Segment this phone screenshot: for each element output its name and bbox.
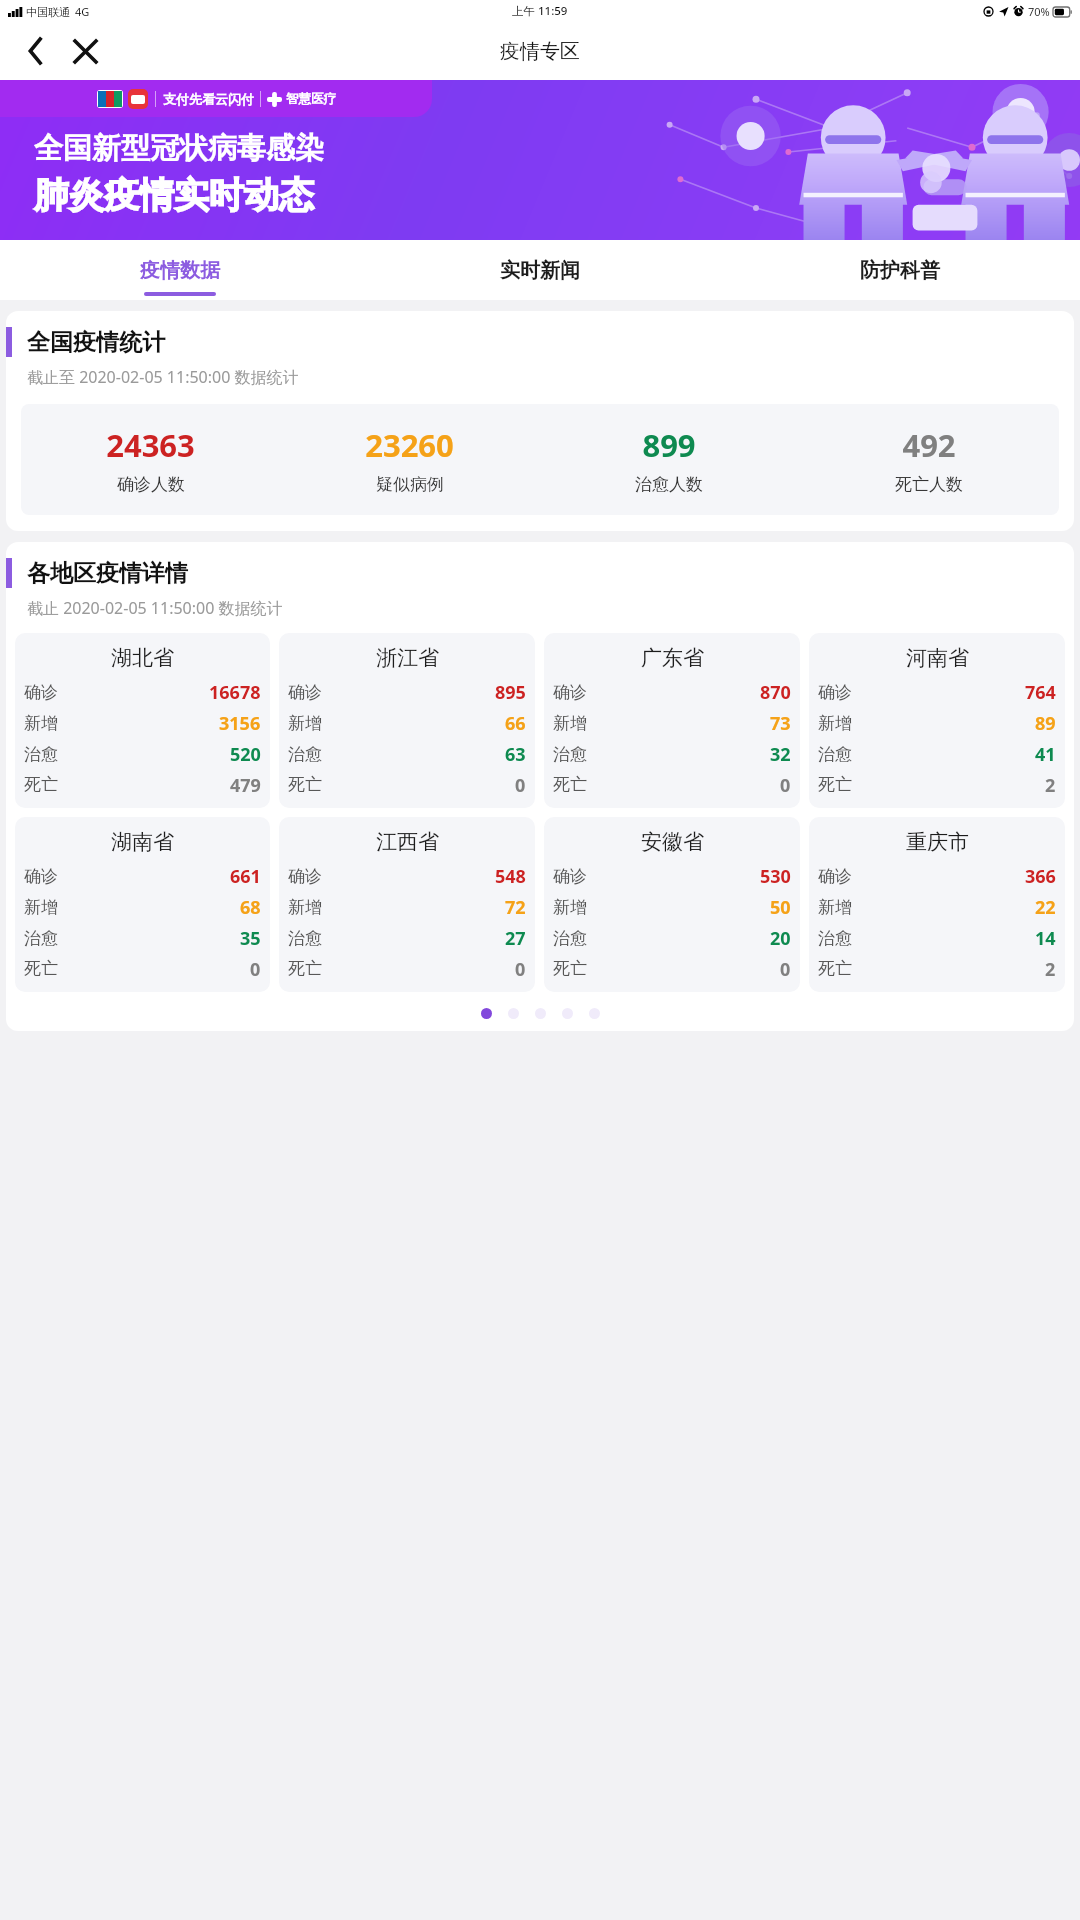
staticText: 366: [1025, 864, 1056, 889]
staticText: 0: [515, 773, 526, 796]
staticText: 新增: [24, 897, 58, 918]
button[interactable]: 实时新闻: [360, 240, 720, 300]
staticText: 0: [780, 957, 791, 980]
staticText: 确诊: [553, 866, 587, 887]
staticText: 870: [760, 680, 791, 705]
button[interactable]: 浙江省: [279, 633, 535, 808]
staticText: 新增: [818, 713, 852, 734]
staticText: 治愈: [24, 928, 58, 949]
staticText: 智慧医疗: [286, 91, 336, 107]
staticText: 63: [505, 742, 526, 767]
staticText: 上午 11:59: [512, 3, 568, 19]
staticText: 死亡人数: [895, 474, 963, 495]
staticText: 疑似病例: [376, 474, 444, 495]
staticText: 479: [230, 773, 261, 796]
button[interactable]: Back: [14, 30, 56, 72]
staticText: 治愈: [553, 744, 587, 765]
staticText: 死亡: [288, 958, 322, 979]
staticText: 3156: [219, 711, 261, 736]
staticText: 各地区疫情详情: [27, 559, 188, 588]
staticText: 661: [230, 864, 261, 889]
staticText: 河南省: [906, 645, 969, 671]
staticText: 68: [240, 895, 261, 920]
button[interactable]: 重庆市: [809, 817, 1065, 992]
button[interactable]: Page 3: [535, 1008, 546, 1019]
staticText: 89: [1035, 711, 1056, 736]
staticText: 确诊人数: [117, 474, 185, 495]
button[interactable]: 湖南省: [15, 817, 270, 992]
button[interactable]: Page 4: [562, 1008, 573, 1019]
staticText: 治愈: [24, 744, 58, 765]
button[interactable]: Page 2: [508, 1008, 519, 1019]
staticText: 确诊: [24, 866, 58, 887]
staticText: 确诊: [553, 682, 587, 703]
staticText: 764: [1025, 680, 1056, 705]
staticText: 安徽省: [641, 829, 704, 855]
button[interactable]: 防护科普: [720, 240, 1080, 300]
staticText: 新增: [553, 897, 587, 918]
staticText: 疫情数据: [140, 258, 220, 283]
staticText: 全国疫情统计: [27, 328, 165, 357]
staticText: 新增: [818, 897, 852, 918]
staticText: 41: [1035, 742, 1056, 767]
staticText: 492: [902, 424, 956, 466]
staticText: 66: [505, 711, 526, 736]
staticText: 支付先看云闪付: [163, 91, 254, 107]
staticText: 实时新闻: [500, 258, 580, 283]
staticText: 4G: [75, 4, 90, 19]
staticText: 治愈: [288, 928, 322, 949]
staticText: 32: [770, 742, 791, 767]
staticText: 20: [770, 926, 791, 951]
button[interactable]: Close: [64, 30, 106, 72]
button[interactable]: 湖北省: [15, 633, 270, 808]
staticText: 死亡: [818, 774, 852, 795]
staticText: 死亡: [24, 774, 58, 795]
staticText: 23260: [365, 424, 454, 466]
staticText: 湖北省: [111, 645, 174, 671]
staticText: 548: [495, 864, 526, 889]
staticText: 27: [505, 926, 526, 951]
staticText: 50: [770, 895, 791, 920]
staticText: 530: [760, 864, 791, 889]
staticText: 73: [770, 711, 791, 736]
staticText: 0: [515, 957, 526, 980]
staticText: 中国联通: [26, 5, 70, 19]
staticText: 疫情专区: [500, 39, 580, 64]
button[interactable]: 河南省: [809, 633, 1065, 808]
staticText: 14: [1035, 926, 1056, 951]
staticText: 截止 2020-02-05 11:50:00 数据统计: [27, 597, 283, 619]
staticText: 22: [1035, 895, 1056, 920]
staticText: 治愈: [818, 928, 852, 949]
staticText: 全国新型冠状病毒感染: [34, 130, 324, 167]
staticText: 72: [505, 895, 526, 920]
staticText: 新增: [288, 897, 322, 918]
staticText: 16678: [209, 680, 261, 705]
button[interactable]: 广东省: [544, 633, 800, 808]
staticText: 死亡: [24, 958, 58, 979]
button[interactable]: 支付先看云闪付: [0, 80, 1080, 240]
staticText: 新增: [553, 713, 587, 734]
staticText: 70%: [1028, 4, 1050, 19]
staticText: 确诊: [288, 866, 322, 887]
staticText: 2: [1045, 773, 1056, 796]
staticText: 肺炎疫情实时动态: [34, 173, 314, 217]
staticText: 新增: [24, 713, 58, 734]
staticText: 35: [240, 926, 261, 951]
button[interactable]: 全国疫情统计: [6, 311, 1074, 531]
button[interactable]: Page 1: [481, 1008, 492, 1019]
staticText: 新增: [288, 713, 322, 734]
staticText: 截止至 2020-02-05 11:50:00 数据统计: [27, 366, 299, 388]
button[interactable]: 疫情数据: [0, 240, 360, 300]
button[interactable]: Page 5: [589, 1008, 600, 1019]
staticText: 治愈: [818, 744, 852, 765]
staticText: 重庆市: [906, 829, 969, 855]
staticText: 治愈: [553, 928, 587, 949]
button[interactable]: 江西省: [279, 817, 535, 992]
staticText: 治愈: [288, 744, 322, 765]
staticText: 24363: [106, 424, 195, 466]
staticText: 死亡: [553, 774, 587, 795]
staticText: 湖南省: [111, 829, 174, 855]
staticText: 广东省: [641, 645, 704, 671]
staticText: 治愈人数: [635, 474, 703, 495]
button[interactable]: 安徽省: [544, 817, 800, 992]
